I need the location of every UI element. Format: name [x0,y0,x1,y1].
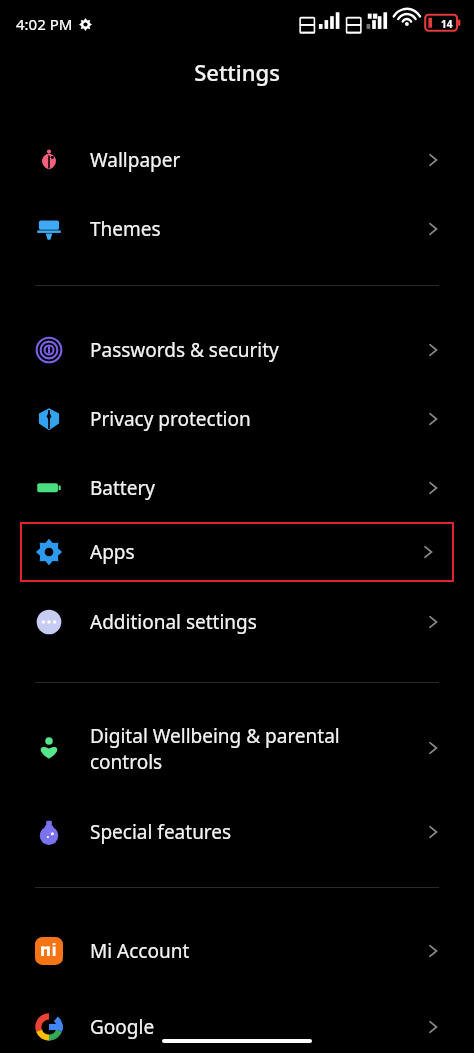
button[interactable]: Themes [0,194,474,263]
other: Open Wallpaper [422,149,444,171]
staticText: Mi Account [90,938,422,964]
staticText: Themes [90,216,422,242]
button[interactable]: Privacy protection [0,384,474,453]
button[interactable]: Apps [20,522,454,582]
staticText: Privacy protection [90,406,422,432]
other: Open Themes [422,218,444,240]
other: Open Apps [417,541,439,563]
other: Open Additional settings [422,611,444,633]
staticText: Google [90,1014,422,1040]
button[interactable]: Special features [0,805,474,859]
button[interactable]: Wallpaper [0,125,474,194]
staticText: Special features [90,819,422,845]
button[interactable]: Google [0,1000,474,1053]
staticText: 4:02 PM [16,14,73,34]
staticText: Passwords & security [90,337,422,363]
other: Open Google [422,1016,444,1038]
other: Open Privacy protection [422,408,444,430]
staticText: Settings [194,57,280,87]
button[interactable]: Additional settings [0,592,474,652]
button[interactable]: Digital Wellbeing & parental controls [0,715,474,781]
staticText: Additional settings [90,609,422,635]
button[interactable]: Mi Account [0,924,474,978]
staticText: Wallpaper [90,147,422,173]
button[interactable]: Passwords & security [0,315,474,384]
other: Open Mi Account [422,940,444,962]
other: Open Battery [422,477,444,499]
staticText: Apps [90,539,417,565]
other: Open Digital Wellbeing & parental contro… [422,737,444,759]
button[interactable]: Battery [0,453,474,522]
staticText: Digital Wellbeing & parental controls [90,723,422,774]
other: Open Passwords & security [422,339,444,361]
other: Open Special features [422,821,444,843]
staticText: 14 [441,17,453,31]
staticText: Battery [90,475,422,501]
